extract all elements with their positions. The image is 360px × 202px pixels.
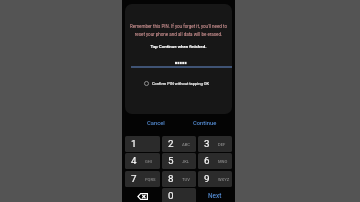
- button[interactable]: 7: [125, 171, 160, 187]
- button[interactable]: Continue: [180, 117, 229, 130]
- button[interactable]: 1: [125, 136, 160, 152]
- staticText: WXYZ: [218, 177, 230, 182]
- staticText: Continue: [193, 120, 217, 127]
- staticText: 8: [168, 173, 174, 184]
- staticText: 2: [168, 138, 174, 149]
- staticText: 1: [131, 138, 137, 149]
- staticText: MNO: [218, 159, 228, 164]
- button[interactable]: 0: [162, 188, 196, 202]
- staticText: JKL: [182, 159, 190, 164]
- button[interactable]: Delete: [125, 188, 160, 202]
- button[interactable]: 2: [162, 136, 196, 152]
- staticText: DEF: [218, 142, 226, 147]
- staticText: PQRS: [145, 177, 156, 182]
- button[interactable]: Cancel: [131, 117, 180, 130]
- staticText: 3: [204, 138, 210, 149]
- staticText: 0: [168, 190, 174, 201]
- staticText: 7: [131, 173, 137, 184]
- staticText: GHI: [145, 159, 152, 164]
- staticText: 6: [204, 155, 210, 166]
- button[interactable]: 4: [125, 153, 160, 169]
- staticText: 5: [168, 155, 174, 166]
- button[interactable]: 9: [198, 171, 232, 187]
- staticText: 4: [131, 155, 137, 166]
- staticText: Remember this PIN. If you forget it, you…: [128, 24, 229, 37]
- staticText: Cancel: [147, 120, 165, 127]
- staticText: Confirm PIN without tapping OK: [152, 81, 209, 86]
- button[interactable]: Confirm PIN without tapping OK: [125, 77, 232, 89]
- button[interactable]: 8: [162, 171, 196, 187]
- staticText: Next: [208, 192, 222, 200]
- staticText: ABC: [182, 142, 190, 147]
- staticText: Tap Continue when finished.: [125, 44, 232, 49]
- button[interactable]: 3: [198, 136, 232, 152]
- staticText: TUV: [182, 177, 190, 182]
- button[interactable]: 6: [198, 153, 232, 169]
- button[interactable]: Next: [198, 188, 232, 202]
- button[interactable]: 5: [162, 153, 196, 169]
- staticText: 9: [204, 173, 210, 184]
